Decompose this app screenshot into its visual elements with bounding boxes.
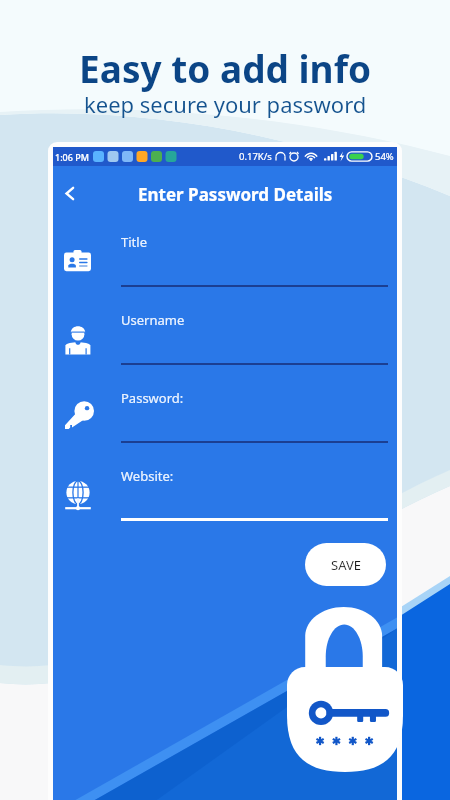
staticText: Enter Password Details [138, 183, 333, 206]
button[interactable]: SAVE [305, 543, 386, 586]
staticText: Website: [121, 467, 174, 485]
staticText: Username [121, 311, 185, 329]
staticText: Easy to add info [79, 43, 372, 93]
staticText: Password: [121, 389, 184, 407]
staticText: keep secure your password [84, 89, 367, 119]
staticText: 54% [375, 150, 394, 163]
staticText: SAVE [331, 556, 361, 574]
staticText: 0.17K/s [239, 150, 272, 163]
staticText: 1:06 PM [55, 151, 89, 163]
staticText: Title [121, 233, 147, 251]
button[interactable]: Back [51, 175, 87, 211]
